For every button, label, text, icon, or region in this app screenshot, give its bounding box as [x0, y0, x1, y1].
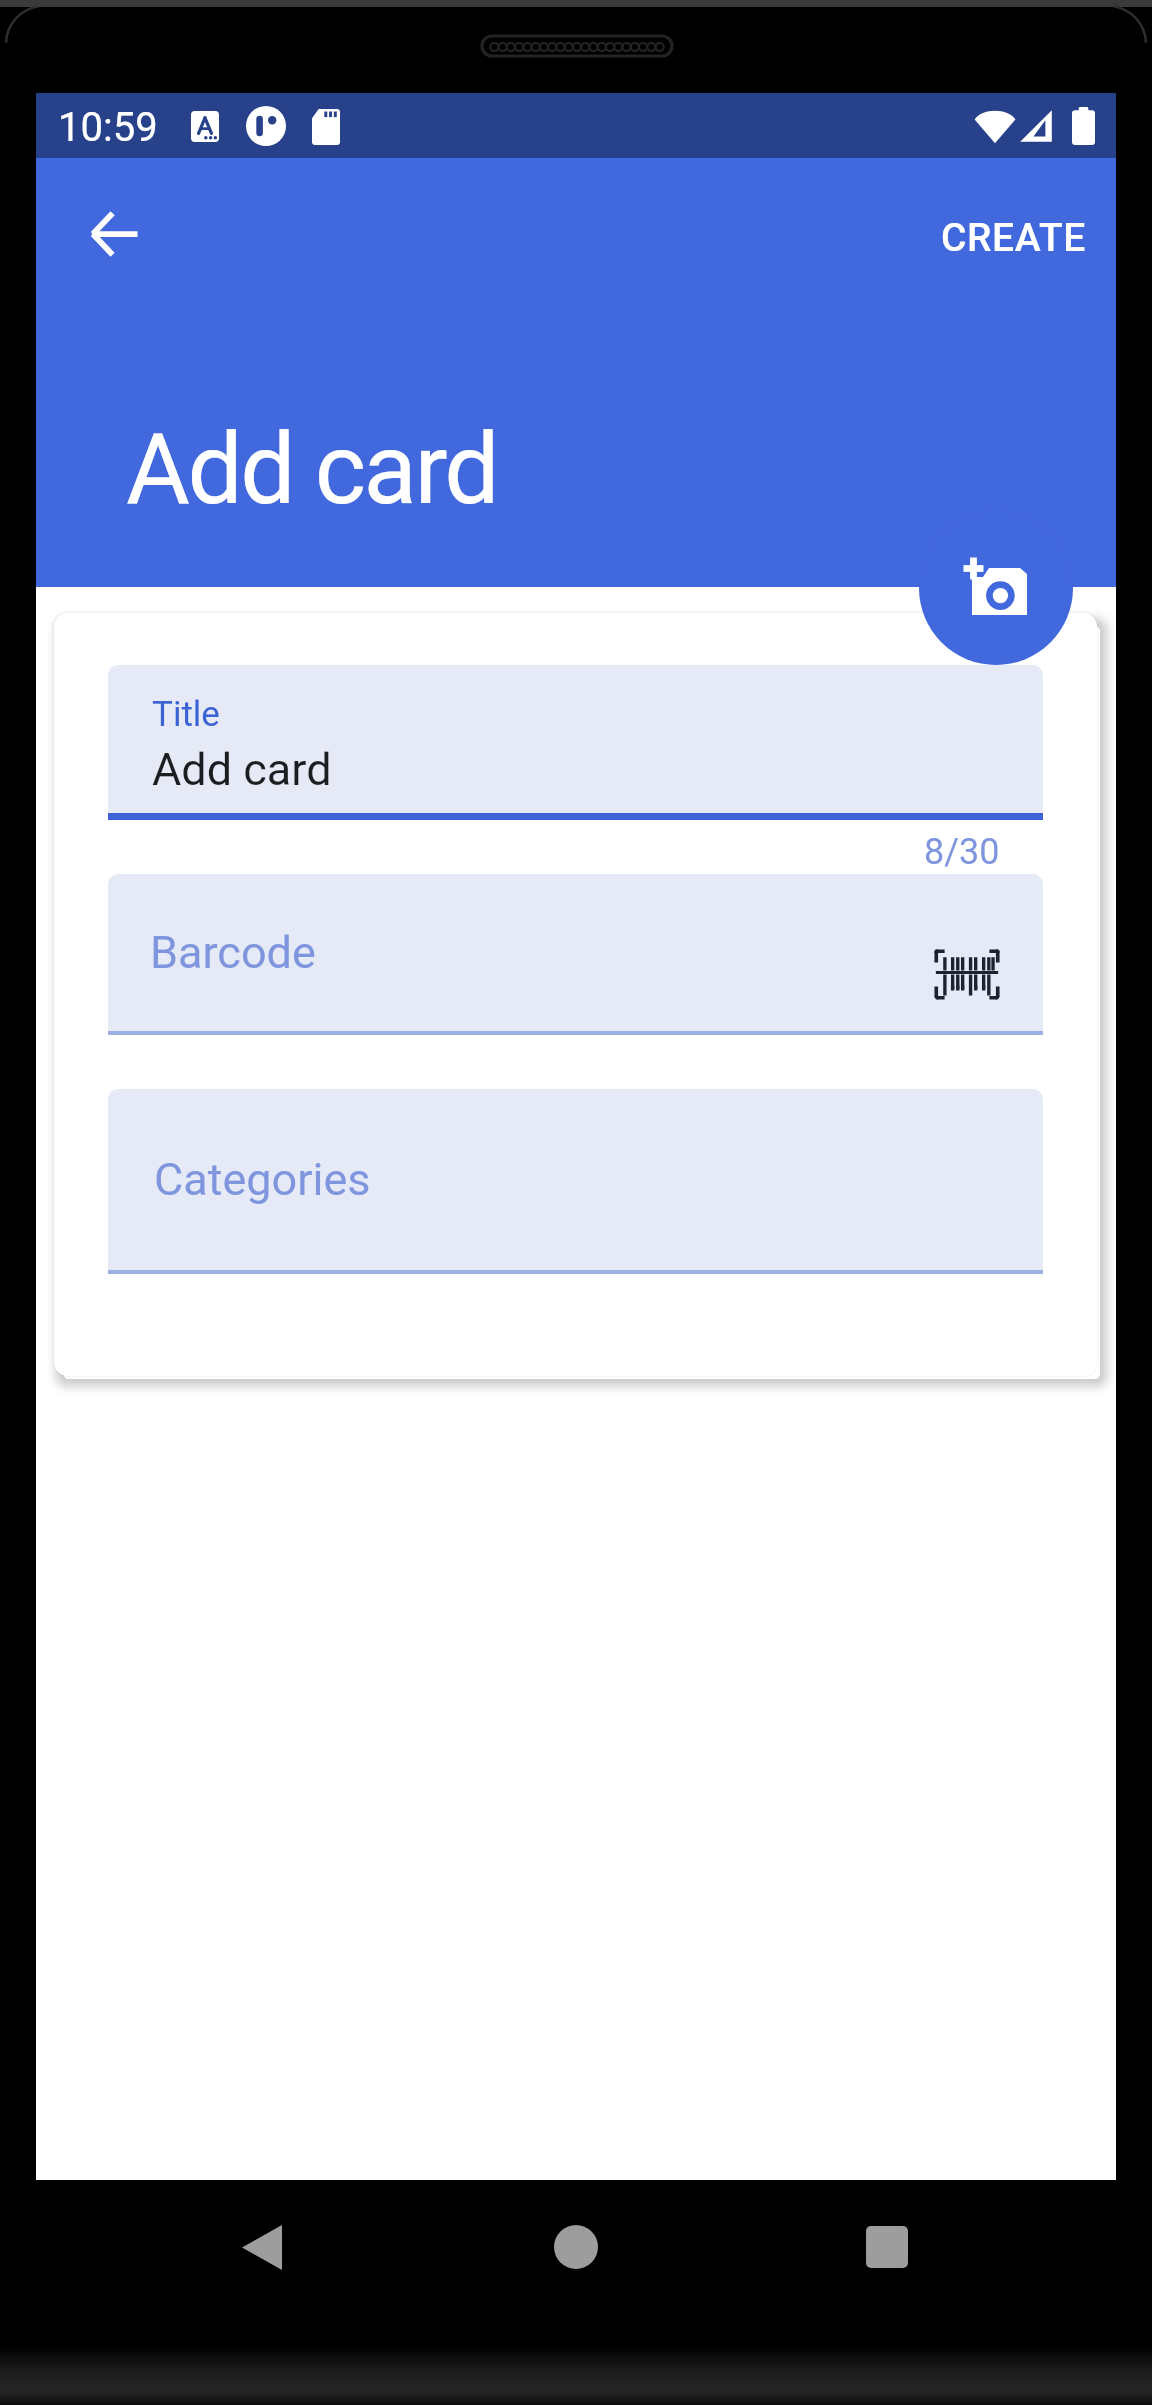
staticText: Add card [152, 743, 332, 796]
button[interactable]: Scan barcode [927, 934, 1007, 1014]
button[interactable]: Barcode [108, 874, 1043, 1035]
staticText: Categories [154, 1153, 371, 1206]
button[interactable]: Back [66, 186, 162, 282]
staticText: 10:59 [58, 104, 158, 151]
staticText: Title [152, 694, 220, 735]
staticText: Add card [126, 412, 497, 527]
button[interactable]: Title [108, 665, 1043, 820]
staticText: Barcode [150, 926, 316, 979]
button[interactable]: Recents [807, 2164, 967, 2330]
button[interactable]: Categories [108, 1089, 1043, 1274]
staticText: CREATE [941, 215, 1086, 261]
button[interactable]: CREATE [925, 201, 1102, 275]
button[interactable]: Home [496, 2164, 656, 2330]
button[interactable]: Add photo [919, 511, 1073, 665]
button[interactable]: Back [182, 2164, 342, 2330]
staticText: 8/30 [924, 831, 1000, 873]
